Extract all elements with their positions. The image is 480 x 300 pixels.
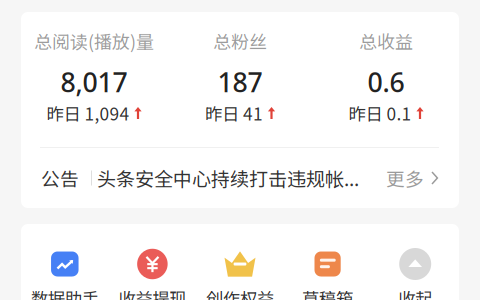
staticText: 草稿箱 [302, 285, 353, 300]
staticText: 昨日 41 [205, 100, 263, 126]
staticText: 收起 [398, 285, 432, 300]
staticText: 总阅读(播放)量 [34, 28, 154, 54]
staticText: 昨日 0.1 [348, 100, 411, 126]
button[interactable]: 草稿箱 [284, 224, 371, 300]
staticText: 创作权益 [206, 285, 274, 300]
staticText: 公告 [41, 164, 79, 191]
button[interactable]: 数据助手 [21, 224, 109, 300]
staticText: 总粉丝 [213, 28, 267, 54]
staticText: 187 [217, 64, 262, 100]
staticText: 数据助手 [31, 285, 99, 300]
button[interactable]: 公告 [21, 148, 459, 208]
staticText: 8,017 [60, 64, 127, 100]
staticText: 更多 [386, 164, 424, 191]
button[interactable]: 收益提现 [109, 224, 196, 300]
button[interactable]: 收起 [371, 224, 459, 300]
staticText: 收益提现 [118, 285, 186, 300]
staticText: 昨日 1,094 [46, 100, 129, 126]
staticText: 总收益 [359, 28, 413, 54]
button[interactable]: 创作权益 [196, 224, 284, 300]
staticText: 头条安全中心持续打击违规帐... [97, 164, 359, 192]
staticText: 0.6 [367, 64, 404, 100]
